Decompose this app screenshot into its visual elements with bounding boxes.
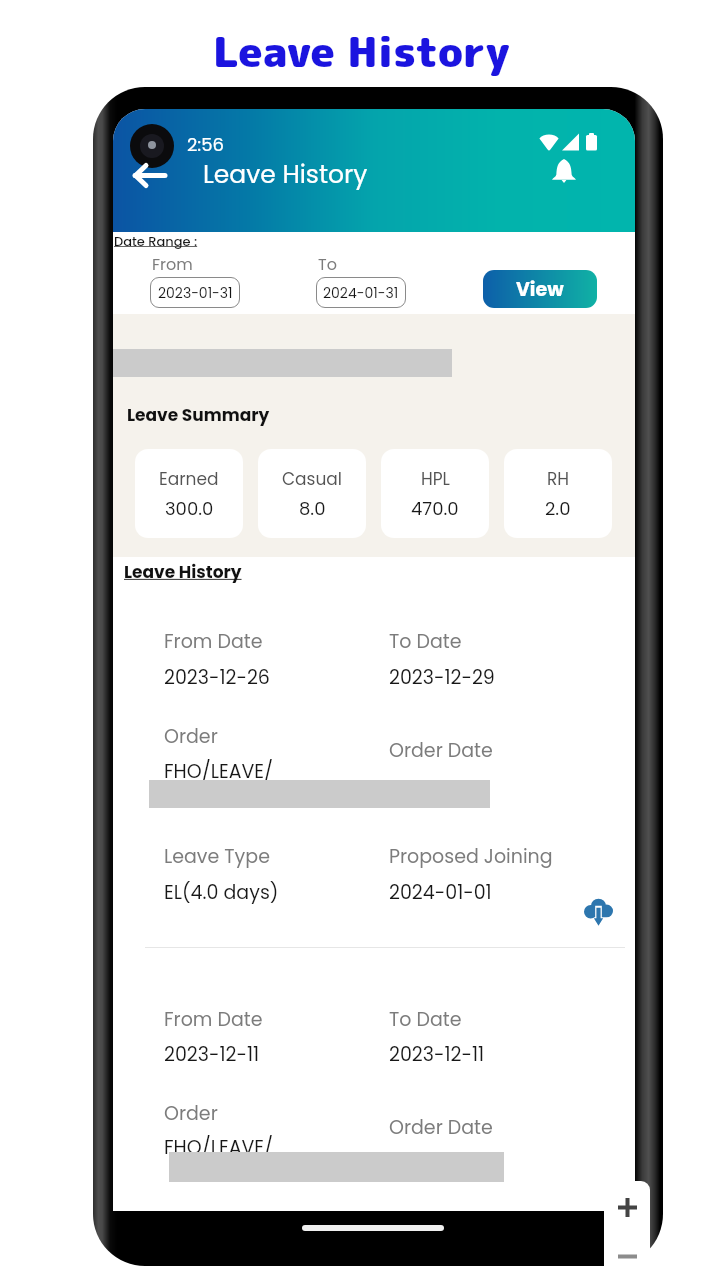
staticText: 2023-12-11 <box>389 1041 485 1068</box>
staticText: 8.0 <box>299 496 326 521</box>
staticText: Proposed Joining <box>389 843 553 870</box>
staticText: FHO/LEAVE/ <box>164 1134 274 1161</box>
staticText: From <box>152 253 193 275</box>
staticText: Earned <box>159 467 219 491</box>
button[interactable]: Zoom in <box>604 1181 650 1233</box>
staticText: Leave History <box>203 157 368 192</box>
button[interactable]: HPL <box>381 449 489 538</box>
staticText: Order <box>164 723 218 750</box>
staticText: 2024-01-01 <box>389 879 492 906</box>
staticText: From Date <box>164 1006 263 1033</box>
staticText: View <box>516 276 564 303</box>
button[interactable]: 2024-01-31 <box>316 277 406 308</box>
staticText: 2023-12-29 <box>389 664 495 691</box>
button[interactable]: View <box>483 270 597 308</box>
staticText: 2.0 <box>545 496 571 521</box>
staticText: RH <box>547 467 570 491</box>
staticText: Order <box>164 1100 218 1127</box>
staticText: To <box>318 253 337 275</box>
staticText: To Date <box>389 1006 462 1033</box>
staticText: Order Date <box>389 1114 493 1141</box>
staticText: From Date <box>164 628 263 655</box>
button[interactable]: Download <box>580 893 616 929</box>
staticText: Date Range : <box>114 232 198 250</box>
button[interactable]: Notifications <box>544 151 583 190</box>
button[interactable]: Zoom out <box>604 1233 650 1280</box>
staticText: EL(4.0 days) <box>164 879 279 906</box>
staticText: 300.0 <box>165 496 214 521</box>
button[interactable]: RH <box>504 449 612 538</box>
staticText: FHO/LEAVE/ <box>164 758 274 785</box>
button[interactable]: 2023-01-31 <box>150 277 240 308</box>
staticText: HPL <box>421 467 450 491</box>
staticText: 2023-12-26 <box>164 664 270 691</box>
staticText: To Date <box>389 628 462 655</box>
staticText: Leave Type <box>164 843 270 870</box>
staticText: Leave History <box>213 22 510 81</box>
button[interactable]: Casual <box>258 449 366 538</box>
staticText: Order Date <box>389 737 493 764</box>
staticText: Leave History <box>124 560 242 584</box>
staticText: 2023-12-11 <box>164 1041 260 1068</box>
button[interactable]: Earned <box>135 449 243 538</box>
staticText: 2024-01-31 <box>323 283 399 303</box>
button[interactable]: Back <box>125 157 173 193</box>
staticText: 2:56 <box>187 132 224 157</box>
staticText: Casual <box>282 467 343 491</box>
staticText: 470.0 <box>411 496 459 521</box>
staticText: Leave Summary <box>127 403 270 427</box>
staticText: 2023-01-31 <box>158 283 233 303</box>
